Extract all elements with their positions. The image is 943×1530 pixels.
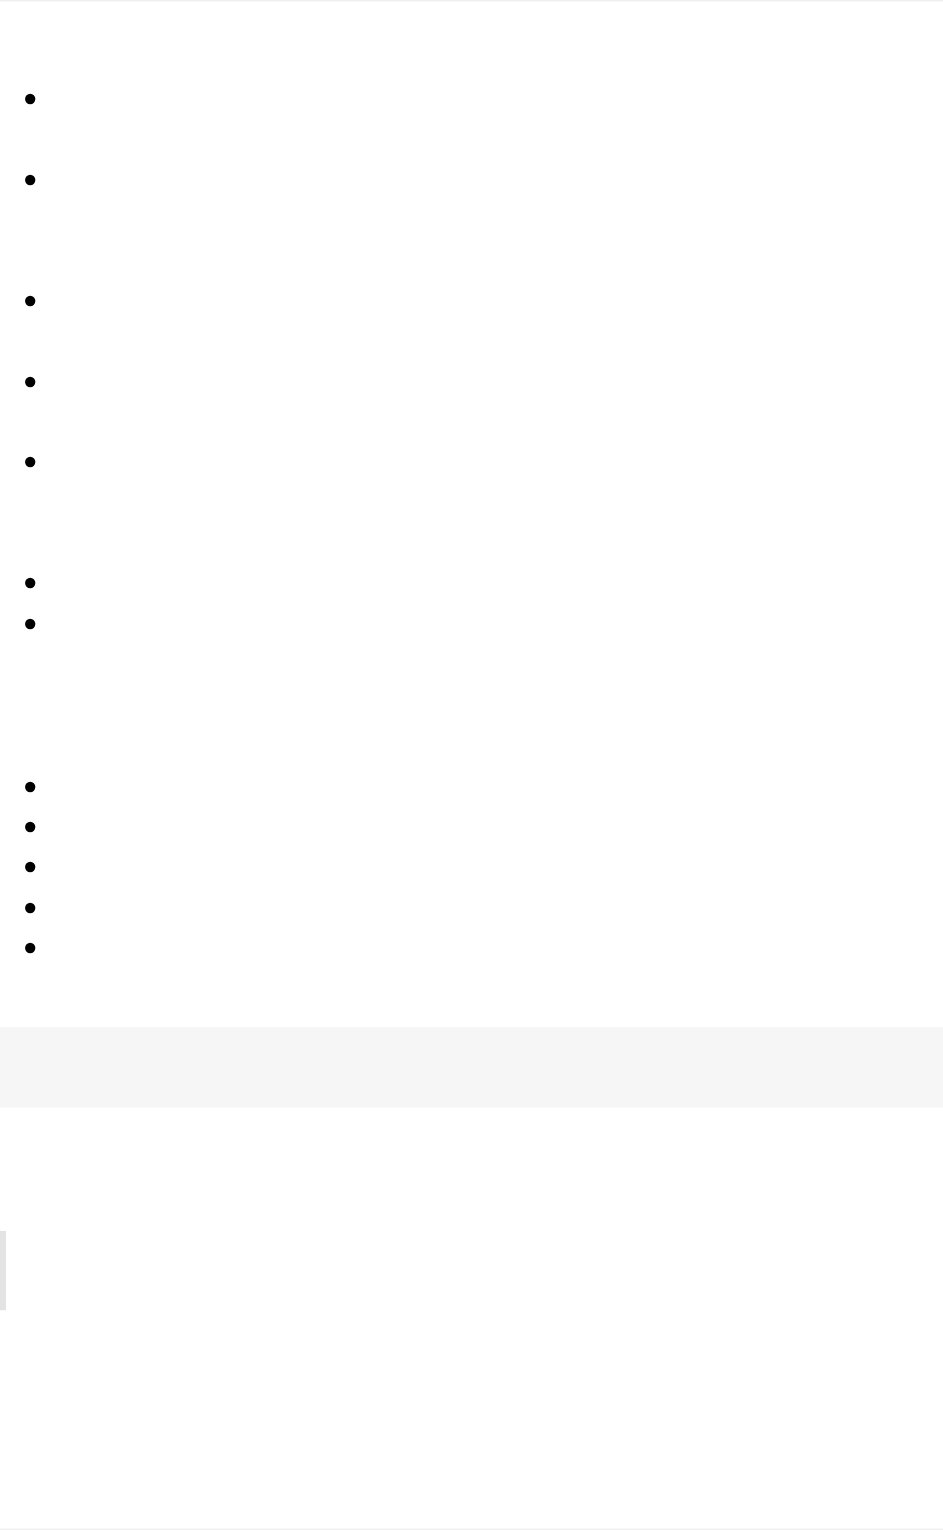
button[interactable]: Widget refresh is delayed xyxy=(0,807,943,847)
other: Release notes xyxy=(0,0,943,1530)
button[interactable]: Background sync now batches requests to … xyxy=(0,160,943,241)
button[interactable]: Search ignores diacritics xyxy=(0,888,943,928)
button[interactable]: Duplicate notifications after sync xyxy=(0,604,943,644)
button[interactable]: Dark theme contrast raised to meet acces… xyxy=(0,442,943,523)
button[interactable]: New adaptive layout engine for large scr… xyxy=(0,79,943,160)
button[interactable]: Offline mode may drop edits xyxy=(0,767,943,807)
button[interactable]: Export to PDF loses captions xyxy=(0,847,943,887)
button[interactable]: Crash on rotate while uploading xyxy=(0,563,943,603)
button[interactable]: Smoother scrolling in long lists with pr… xyxy=(0,281,943,362)
button[interactable]: Faster cold start, media decoding moved … xyxy=(0,362,943,443)
button[interactable]: Tablet split view flickers xyxy=(0,928,943,968)
